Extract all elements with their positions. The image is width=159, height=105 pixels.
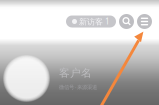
staticText: 客户名 xyxy=(59,66,92,79)
button[interactable]: Menu xyxy=(137,14,152,29)
staticText: 微信号 · 来源渠道 xyxy=(59,83,97,91)
button[interactable]: Search xyxy=(119,14,134,29)
button[interactable]: 客户名 xyxy=(0,55,159,102)
button[interactable]: 新访客 1 xyxy=(66,15,116,27)
staticText: 新访客 1 xyxy=(79,16,110,27)
